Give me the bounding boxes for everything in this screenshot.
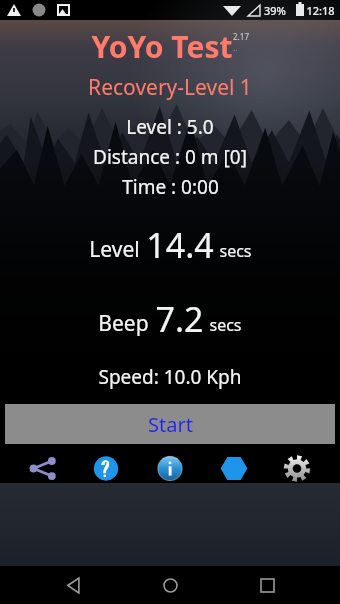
staticText: .. (233, 42, 238, 53)
staticText: Beep (98, 309, 149, 338)
staticText: 39% (264, 3, 286, 18)
staticText: Speed: 10.0 Kph (98, 364, 242, 390)
button[interactable]: Start (5, 404, 335, 444)
staticText: 12:18 (306, 3, 335, 18)
button[interactable]: Help (85, 454, 127, 483)
staticText: Level : 5.0 (126, 114, 214, 140)
staticText: Recovery-Level 1 (88, 73, 252, 102)
staticText: 7.2 (155, 296, 204, 342)
button[interactable]: Settings (276, 454, 318, 483)
staticText: Distance : 0 m [0] (93, 144, 247, 170)
button[interactable]: Advertisement (0, 483, 340, 566)
button[interactable]: Information (149, 454, 191, 483)
staticText: YoYo Test (91, 26, 233, 67)
button[interactable]: Home (146, 566, 194, 604)
button[interactable]: Pro version (213, 454, 255, 483)
staticText: Start (148, 411, 193, 438)
staticText: 2.17 (233, 31, 249, 42)
staticText: 14.4 (146, 222, 214, 268)
staticText: Time : 0:00 (122, 174, 219, 200)
button[interactable]: Back (49, 566, 97, 604)
staticText: Level (89, 235, 140, 264)
button[interactable]: Recent apps (243, 566, 291, 604)
staticText: secs (219, 240, 252, 262)
staticText: secs (209, 314, 242, 336)
button[interactable]: Share (22, 454, 64, 483)
